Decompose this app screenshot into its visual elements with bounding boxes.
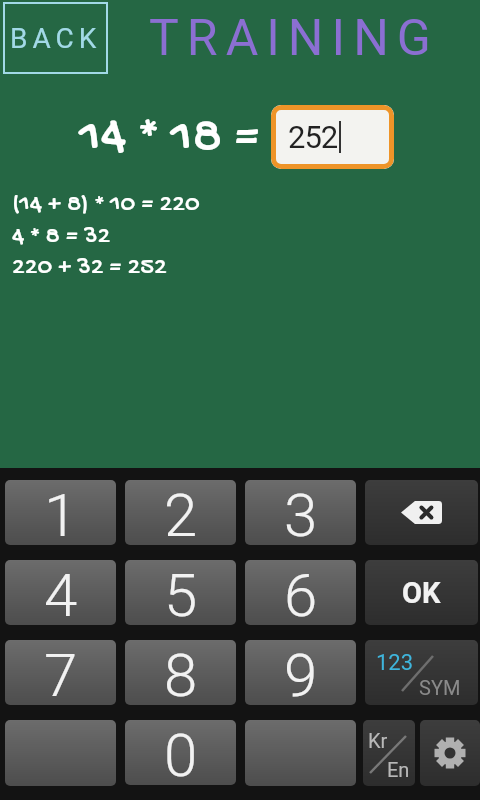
button[interactable]: 2 xyxy=(125,480,236,545)
staticText: SYM xyxy=(419,676,461,699)
staticText: 2 xyxy=(164,480,198,545)
staticText: TRAINING xyxy=(149,9,439,68)
staticText: En xyxy=(387,758,410,781)
staticText: 1 xyxy=(44,480,78,545)
button[interactable]: 1 xyxy=(5,480,116,545)
button[interactable]: 123 xyxy=(365,640,478,705)
button[interactable]: 7 xyxy=(5,640,116,705)
button[interactable] xyxy=(365,480,478,545)
staticText: 5 xyxy=(164,560,198,625)
staticText: 0 xyxy=(164,720,198,785)
button[interactable] xyxy=(245,720,356,786)
button[interactable] xyxy=(420,720,480,786)
staticText: 3 xyxy=(284,480,318,545)
staticText: 14 * 18 = xyxy=(79,107,260,171)
staticText: (14 + 8) * 10 = 220 xyxy=(12,190,200,221)
button[interactable]: OK xyxy=(365,560,478,625)
staticText: 8 xyxy=(164,640,198,705)
staticText: 252 xyxy=(288,119,338,155)
button[interactable]: 0 xyxy=(125,720,236,785)
button[interactable]: Kr xyxy=(363,720,415,786)
staticText: Kr xyxy=(368,729,388,752)
button[interactable]: BACK xyxy=(3,2,108,74)
staticText: 9 xyxy=(284,640,318,705)
staticText: 123 xyxy=(376,650,414,676)
button[interactable]: 8 xyxy=(125,640,236,705)
staticText: 220 + 32 = 252 xyxy=(12,253,167,284)
button[interactable]: 5 xyxy=(125,560,236,625)
button[interactable]: 9 xyxy=(245,640,356,705)
button[interactable]: 3 xyxy=(245,480,356,545)
button[interactable]: 6 xyxy=(245,560,356,625)
staticText: 4 xyxy=(44,560,78,625)
staticText: 4 * 8 = 32 xyxy=(12,222,111,253)
button[interactable] xyxy=(5,720,116,786)
staticText: BACK xyxy=(10,22,102,55)
staticText: 7 xyxy=(44,640,78,705)
button[interactable]: 4 xyxy=(5,560,116,625)
button[interactable]: 252 xyxy=(271,105,394,169)
staticText: OK xyxy=(402,576,441,610)
staticText: 6 xyxy=(284,560,318,625)
